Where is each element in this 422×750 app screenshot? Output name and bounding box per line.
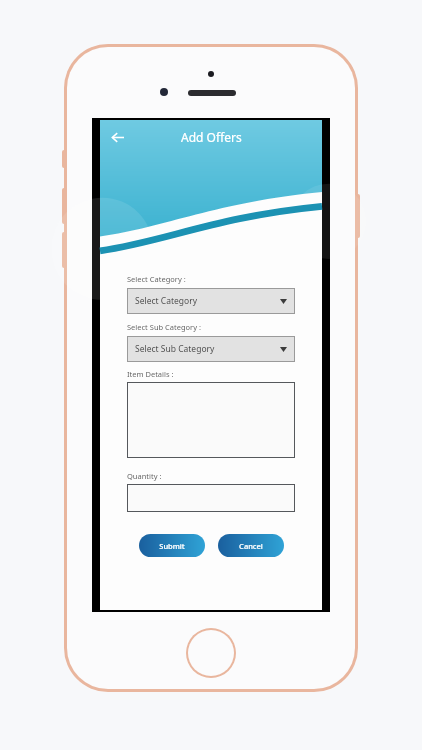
staticText: Select Category (135, 295, 198, 307)
staticText: Submit (159, 541, 185, 551)
button[interactable] (127, 382, 295, 458)
staticText: Item Details : (127, 369, 174, 379)
staticText: Quantity : (127, 471, 162, 481)
button[interactable]: Select Sub Category (127, 336, 295, 362)
staticText: Add Offers (181, 129, 242, 145)
staticText: Cancel (239, 541, 263, 551)
button[interactable]: Submit (139, 534, 205, 557)
staticText: Select Category : (127, 274, 186, 284)
button[interactable]: Back (100, 120, 134, 154)
button[interactable]: Select Category (127, 288, 295, 314)
button[interactable]: Cancel (218, 534, 284, 557)
button[interactable] (127, 484, 295, 512)
staticText: Select Sub Category : (127, 322, 202, 332)
staticText: Select Sub Category (135, 343, 215, 355)
